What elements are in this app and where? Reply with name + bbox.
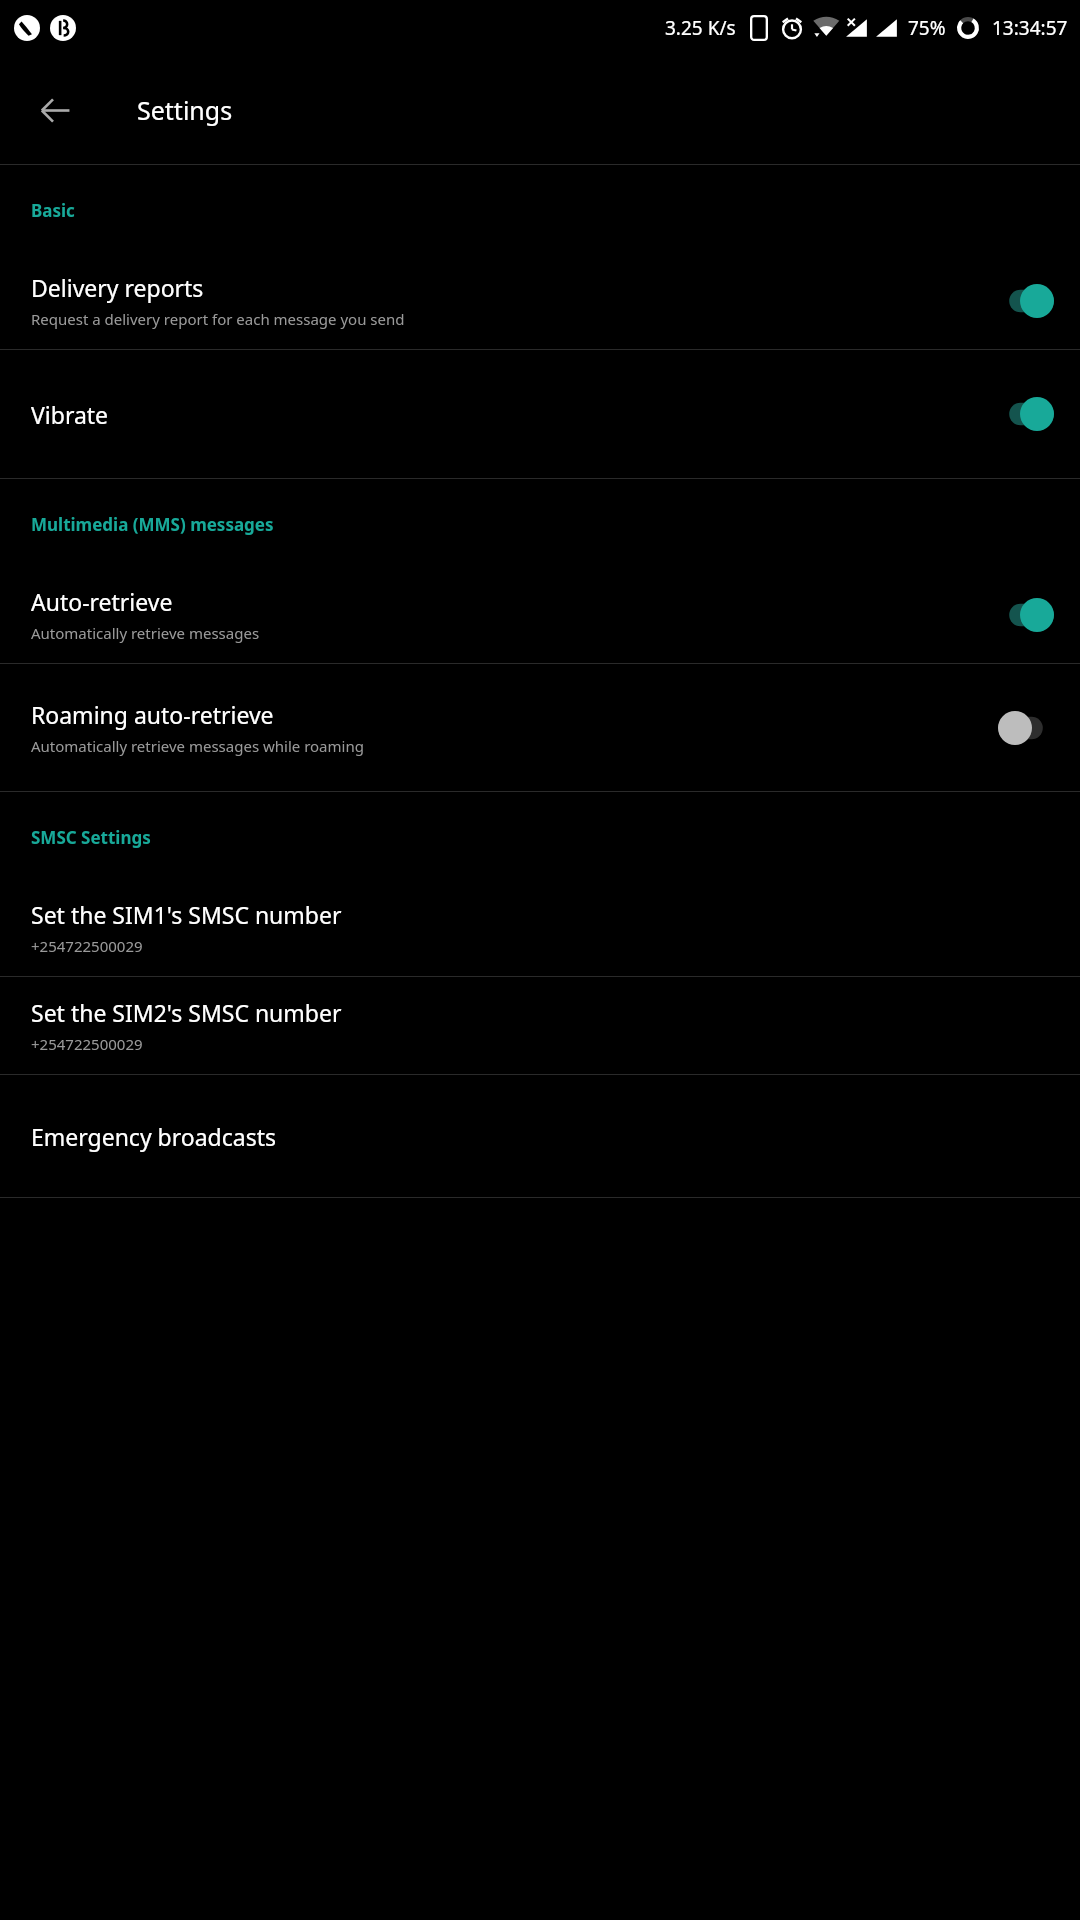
staticText: Delivery reports	[31, 272, 204, 303]
staticText: 75%	[908, 15, 946, 41]
button[interactable]: Toggle on	[998, 598, 1054, 632]
button[interactable]: Emergency broadcasts	[0, 1075, 1080, 1197]
staticText: Set the SIM1's SMSC number	[31, 899, 342, 930]
staticText: SMSC Settings	[31, 826, 151, 849]
button[interactable]: Vibrate	[0, 350, 1080, 478]
button[interactable]: Toggle on	[998, 397, 1054, 431]
staticText: Automatically retrieve messages	[31, 623, 260, 643]
staticText: +254722500029	[31, 1034, 143, 1054]
staticText: Roaming auto-retrieve	[31, 699, 274, 730]
button[interactable]: Delivery reports	[0, 252, 1080, 349]
staticText: Emergency broadcasts	[31, 1121, 277, 1152]
button[interactable]: Toggle on	[998, 284, 1054, 318]
button[interactable]: Set the SIM1's SMSC number	[0, 879, 1080, 976]
staticText: Basic	[31, 199, 75, 222]
button[interactable]: Auto-retrieve	[0, 566, 1080, 663]
staticText: Settings	[137, 93, 233, 127]
staticText: Vibrate	[31, 399, 109, 430]
staticText: Set the SIM2's SMSC number	[31, 997, 342, 1028]
staticText: Automatically retrieve messages while ro…	[31, 736, 364, 756]
staticText: Auto-retrieve	[31, 586, 173, 617]
staticText: Multimedia (MMS) messages	[31, 513, 274, 536]
button[interactable]: Back	[24, 79, 86, 141]
button[interactable]: Roaming auto-retrieve	[0, 664, 1080, 791]
button[interactable]: Set the SIM2's SMSC number	[0, 977, 1080, 1074]
staticText: Request a delivery report for each messa…	[31, 309, 405, 329]
button[interactable]: Toggle off	[998, 711, 1054, 745]
staticText: 13:34:57	[992, 15, 1068, 41]
staticText: +254722500029	[31, 936, 143, 956]
staticText: 3.25 K/s	[665, 15, 736, 41]
